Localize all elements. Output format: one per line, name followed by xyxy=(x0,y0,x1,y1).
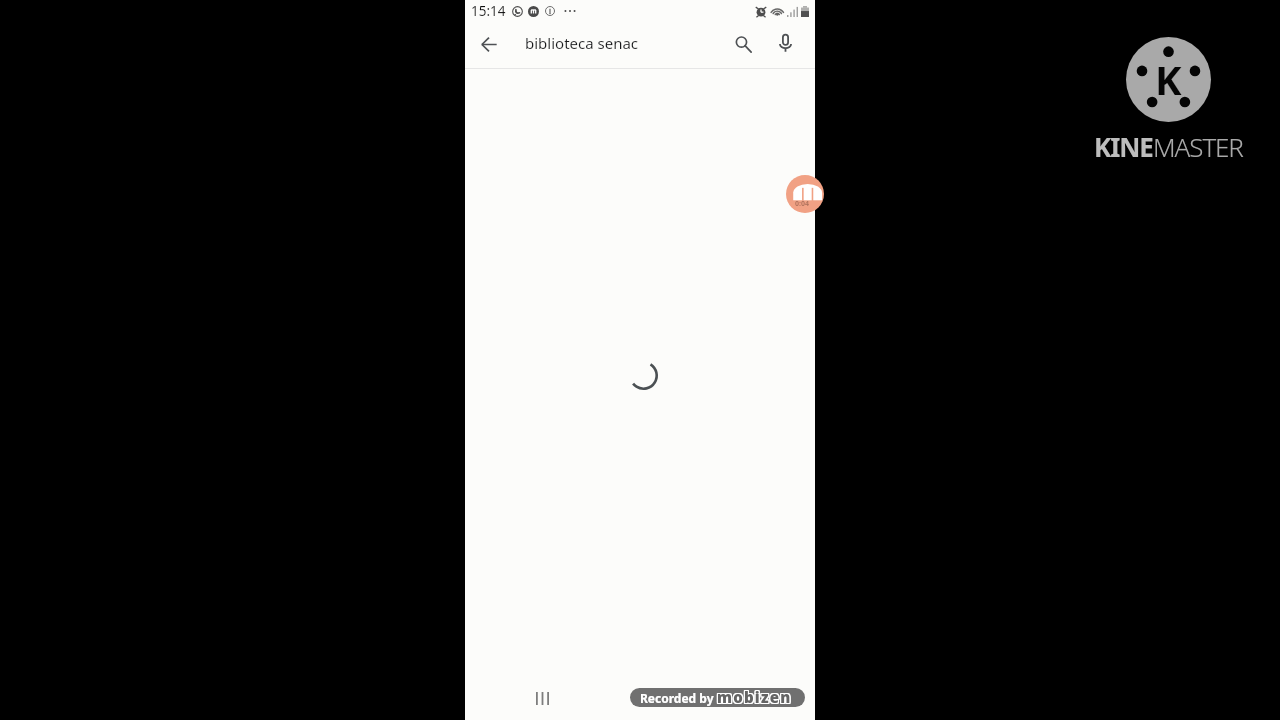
staticText: mobizen xyxy=(718,688,793,706)
staticText: mobizen xyxy=(717,688,792,706)
button[interactable]: Mobizen recorder xyxy=(786,175,824,213)
staticText: mobizen xyxy=(716,688,791,707)
staticText: mobizen xyxy=(717,688,792,705)
staticText: mobizen xyxy=(716,688,791,705)
staticText: mobizen xyxy=(717,688,792,707)
button[interactable]: biblioteca senac xyxy=(513,22,723,68)
staticText: MASTER xyxy=(1153,129,1243,164)
staticText: 0:04 xyxy=(795,199,809,209)
staticText: KINE xyxy=(1094,129,1153,164)
button[interactable]: Voice search xyxy=(769,27,801,59)
staticText: mobizen xyxy=(716,688,791,706)
button[interactable]: Recent apps xyxy=(525,683,559,713)
staticText: K xyxy=(1155,52,1182,106)
staticText: biblioteca senac xyxy=(525,33,639,53)
button[interactable]: Back xyxy=(473,28,505,60)
staticText: mobizen xyxy=(718,688,793,707)
staticText: mobizen xyxy=(718,688,793,705)
staticText: Recorded by xyxy=(640,690,714,706)
staticText: 15:14 xyxy=(471,2,506,20)
button[interactable]: Search xyxy=(727,28,759,60)
